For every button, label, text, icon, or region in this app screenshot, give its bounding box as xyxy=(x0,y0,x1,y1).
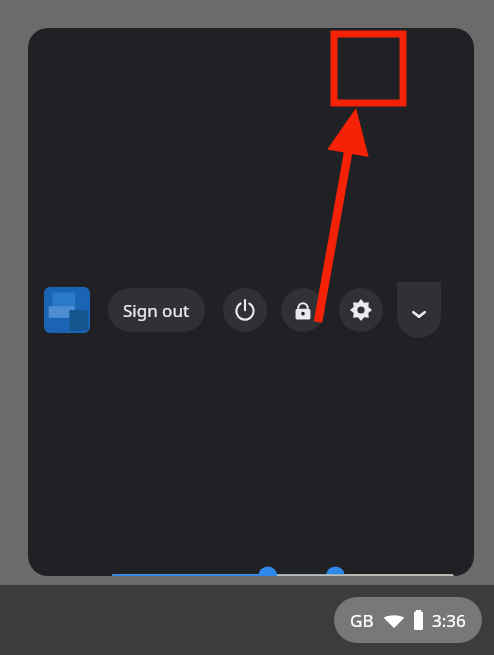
button[interactable]: Settings xyxy=(339,288,383,332)
staticText: Sign out xyxy=(123,299,190,322)
staticText: GB xyxy=(350,609,374,632)
button[interactable]: Account avatar xyxy=(44,287,90,333)
button[interactable]: Power xyxy=(223,288,267,332)
button[interactable]: GB xyxy=(334,597,482,643)
button[interactable]: Collapse xyxy=(397,282,441,338)
staticText: 3:36 xyxy=(432,609,466,632)
button[interactable]: Sign out xyxy=(108,288,205,332)
button[interactable]: Lock xyxy=(281,288,325,332)
